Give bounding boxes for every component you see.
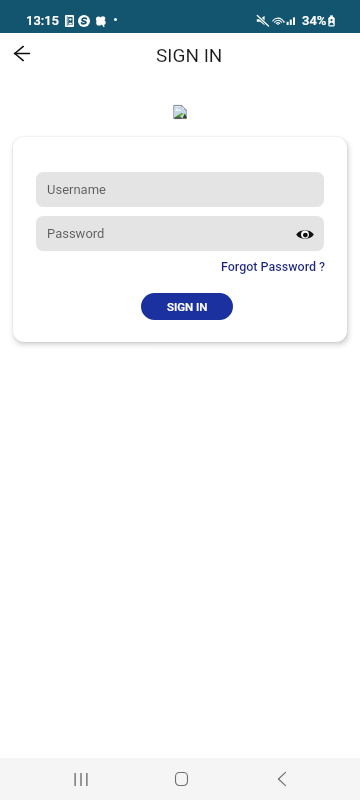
staticText: 13:15 bbox=[26, 13, 60, 28]
staticText: 34% bbox=[302, 13, 327, 28]
staticText: Password bbox=[47, 226, 105, 241]
button[interactable]: Home bbox=[159, 758, 203, 800]
staticText: Forgot Password ? bbox=[221, 259, 326, 274]
staticText: SIGN IN bbox=[156, 44, 223, 66]
staticText: SIGN IN bbox=[167, 300, 208, 313]
button[interactable]: SIGN IN bbox=[141, 293, 233, 320]
button[interactable]: Back bbox=[260, 758, 304, 800]
button[interactable]: Back bbox=[5, 38, 39, 72]
button[interactable]: Show password bbox=[294, 223, 316, 245]
button[interactable]: Recent apps bbox=[59, 758, 103, 800]
staticText: Username bbox=[47, 182, 106, 197]
button[interactable]: Username bbox=[36, 172, 324, 207]
button[interactable]: Forgot Password ? bbox=[221, 259, 326, 274]
button[interactable]: Password bbox=[36, 216, 324, 251]
